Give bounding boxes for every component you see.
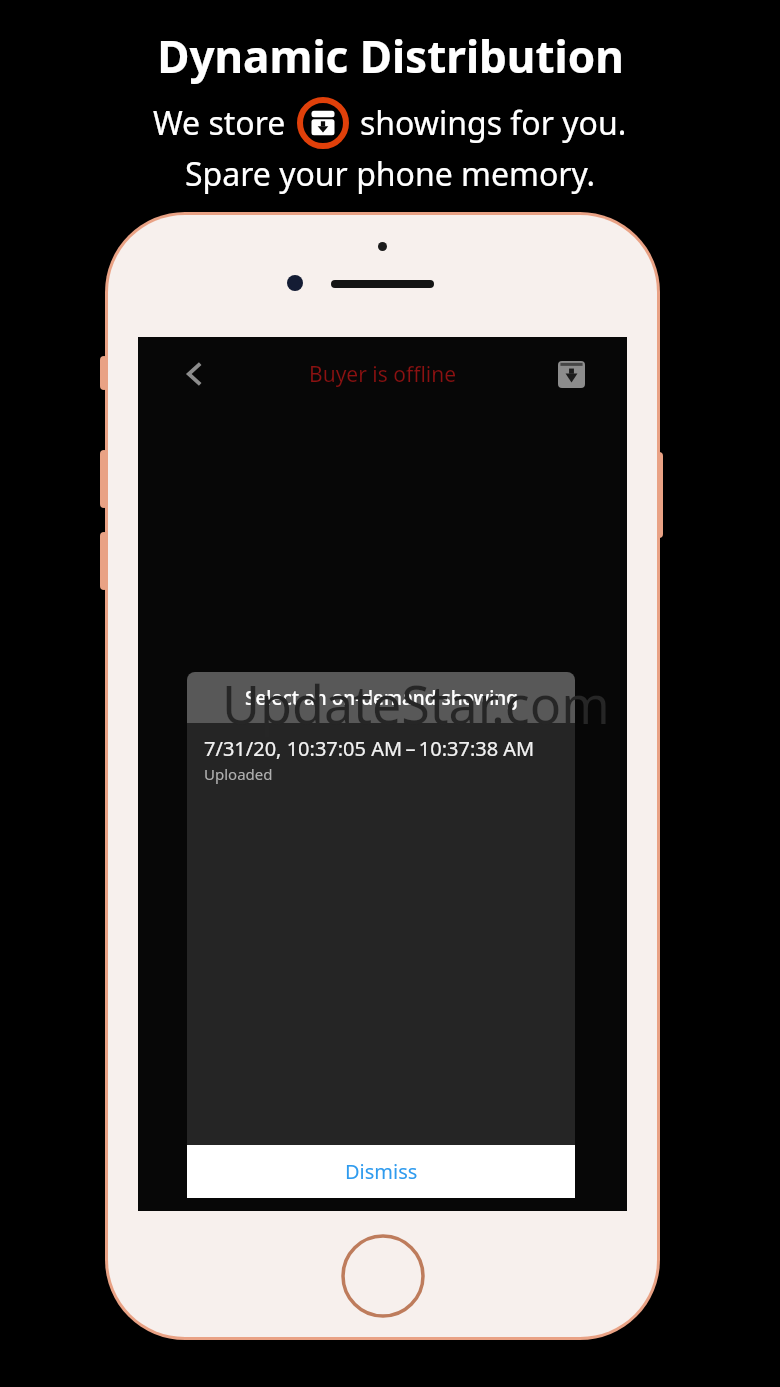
button[interactable]: 7/31/20, 10:37:05 AM – 10:37:38 AM xyxy=(187,723,575,794)
button[interactable]: Dismiss xyxy=(187,1145,575,1198)
button[interactable]: Back xyxy=(174,353,216,395)
staticText: Uploaded xyxy=(204,764,273,784)
button[interactable]: Archive showings xyxy=(551,354,591,394)
staticText: Dismiss xyxy=(345,1158,418,1185)
staticText: Dynamic Distribution xyxy=(157,26,624,86)
staticText: Buyer is offline xyxy=(309,360,457,389)
staticText: Select an on-demand showing xyxy=(245,685,518,711)
staticText: showings for you. xyxy=(360,101,627,145)
staticText: UpdateStar.com xyxy=(222,668,610,739)
staticText: 7/31/20, 10:37:05 AM – 10:37:38 AM xyxy=(204,735,535,762)
staticText: Spare your phone memory. xyxy=(185,152,596,196)
staticText: We store xyxy=(153,101,286,145)
